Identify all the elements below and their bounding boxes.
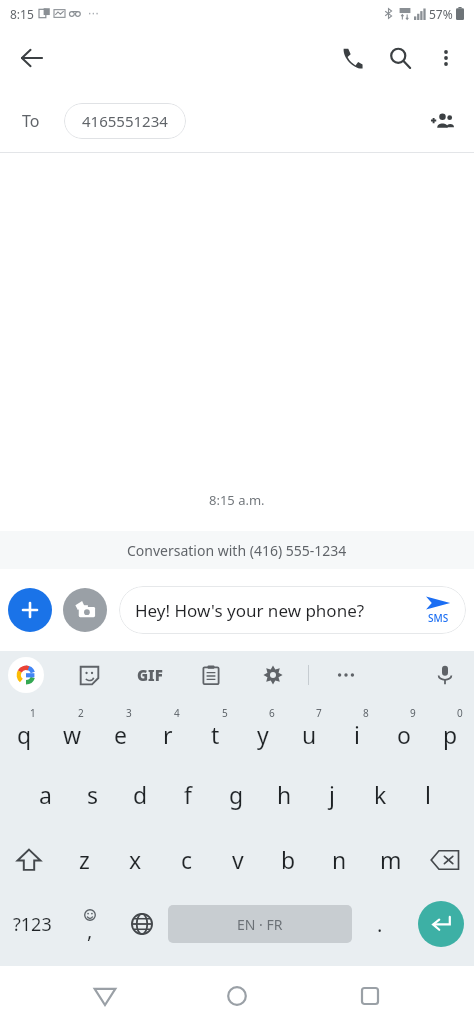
staticText: z <box>79 844 90 875</box>
button[interactable]: Back <box>77 968 133 1024</box>
button[interactable]: q <box>0 698 48 762</box>
button[interactable]: Search <box>376 34 424 82</box>
button[interactable]: y <box>239 698 286 762</box>
staticText: Conversation with (416) 555-1234 <box>127 541 347 560</box>
button[interactable]: Enter <box>408 892 474 956</box>
button[interactable]: s <box>69 762 116 827</box>
button[interactable]: GIF <box>130 655 170 695</box>
staticText: 9 <box>410 706 416 720</box>
button[interactable]: w <box>48 698 96 762</box>
button[interactable]: Hey! How's your new phone? <box>119 586 466 634</box>
button[interactable]: Home <box>209 968 265 1024</box>
button[interactable]: Stickers <box>70 656 108 694</box>
button[interactable]: EN · FR <box>168 905 352 943</box>
staticText: v <box>232 844 244 875</box>
button[interactable]: o <box>380 698 427 762</box>
staticText: k <box>374 779 387 810</box>
button[interactable]: e <box>96 698 144 762</box>
staticText: h <box>277 779 292 810</box>
button[interactable]: Settings <box>254 656 292 694</box>
staticText: r <box>163 719 173 750</box>
staticText: 4 <box>174 706 180 720</box>
staticText: ?123 <box>13 912 52 937</box>
staticText: f <box>184 779 192 810</box>
button[interactable]: More options <box>424 36 468 80</box>
staticText: 0 <box>457 706 463 720</box>
staticText: GIF <box>137 665 163 685</box>
button[interactable]: h <box>260 762 308 827</box>
staticText: e <box>114 719 127 750</box>
button[interactable]: r <box>144 698 192 762</box>
button[interactable]: c <box>161 827 212 892</box>
staticText: ⋯ <box>88 7 99 20</box>
staticText: 8 <box>363 706 369 720</box>
staticText: j <box>329 779 335 810</box>
button[interactable]: Google <box>8 657 44 693</box>
staticText: x <box>129 844 142 875</box>
staticText: c <box>181 844 193 875</box>
staticText: s <box>87 779 99 810</box>
staticText: q <box>17 719 32 750</box>
button[interactable]: a <box>22 762 69 827</box>
staticText: y <box>257 719 269 750</box>
staticText: 5 <box>222 706 228 720</box>
button[interactable]: Backspace <box>416 827 474 892</box>
button[interactable]: Add recipients <box>420 99 464 143</box>
staticText: . <box>377 911 383 938</box>
staticText: w <box>63 719 82 750</box>
button[interactable]: Recent apps <box>342 968 398 1024</box>
staticText: o <box>397 719 411 750</box>
button[interactable]: m <box>365 827 416 892</box>
button[interactable]: Voice input <box>426 656 464 694</box>
button[interactable]: v <box>212 827 263 892</box>
button[interactable]: 4165551234 <box>64 103 186 139</box>
button[interactable]: j <box>308 762 356 827</box>
staticText: Hey! How's your new phone? <box>135 599 365 622</box>
button[interactable]: d <box>116 762 164 827</box>
staticText: l <box>425 779 431 810</box>
button[interactable]: b <box>263 827 314 892</box>
staticText: , <box>87 917 93 944</box>
button[interactable]: . <box>352 892 408 956</box>
button[interactable]: Shift <box>0 827 58 892</box>
button[interactable]: Add <box>8 588 52 632</box>
staticText: To <box>22 110 40 132</box>
staticText: p <box>443 719 458 750</box>
button[interactable]: p <box>427 698 474 762</box>
button[interactable]: n <box>314 827 365 892</box>
button[interactable]: ?123 <box>0 892 64 956</box>
button[interactable]: k <box>356 762 404 827</box>
staticText: 7 <box>316 706 322 720</box>
staticText: 8:15 a.m. <box>209 491 265 509</box>
button[interactable]: g <box>212 762 260 827</box>
button[interactable]: i <box>333 698 380 762</box>
button[interactable]: l <box>404 762 452 827</box>
button[interactable]: Call <box>328 34 376 82</box>
staticText: n <box>332 844 347 875</box>
button[interactable]: Change language <box>116 892 168 956</box>
button[interactable]: Emoji and comma <box>64 892 116 956</box>
staticText: 2 <box>78 706 84 720</box>
staticText: t <box>211 719 220 750</box>
staticText: 57% <box>429 6 453 22</box>
staticText: a <box>39 779 52 810</box>
button[interactable]: Send SMS <box>418 595 458 625</box>
button[interactable]: f <box>164 762 212 827</box>
button[interactable]: Back <box>8 34 56 82</box>
staticText: i <box>354 719 360 750</box>
button[interactable]: z <box>58 827 110 892</box>
button[interactable]: More <box>327 656 365 694</box>
button[interactable]: Camera <box>63 588 107 632</box>
button[interactable]: x <box>110 827 161 892</box>
button[interactable]: Clipboard <box>192 656 230 694</box>
staticText: d <box>133 779 148 810</box>
staticText: g <box>229 779 244 810</box>
staticText: m <box>380 844 402 875</box>
button[interactable]: t <box>192 698 239 762</box>
button[interactable]: u <box>286 698 333 762</box>
staticText: EN · FR <box>237 915 283 934</box>
staticText: u <box>302 719 317 750</box>
staticText: 3 <box>126 706 132 720</box>
staticText: b <box>281 844 296 875</box>
staticText: 4165551234 <box>82 111 168 131</box>
